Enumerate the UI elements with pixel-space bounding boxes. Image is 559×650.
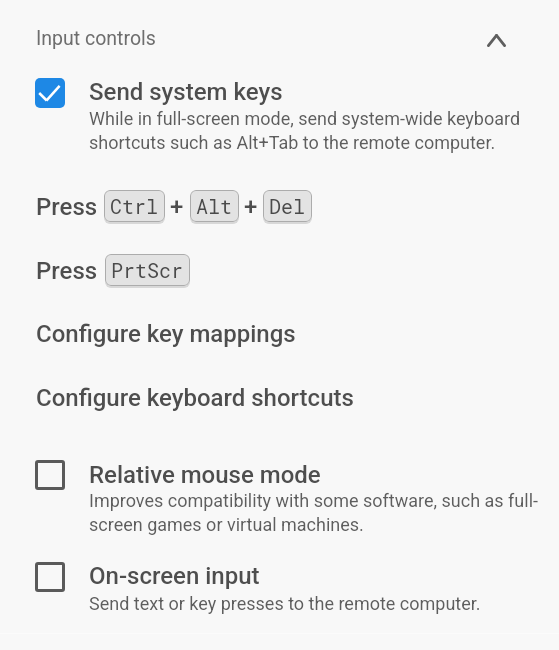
staticText: Configure keyboard shortcuts bbox=[36, 384, 354, 412]
staticText: Alt bbox=[196, 193, 233, 219]
staticText: Input controls bbox=[36, 27, 156, 50]
staticText: Ctrl bbox=[110, 193, 159, 219]
staticText: On-screen input bbox=[89, 562, 260, 590]
button[interactable]: Relative mouse mode bbox=[0, 452, 559, 532]
staticText: Del bbox=[269, 193, 306, 219]
button[interactable]: On-screen input bbox=[0, 554, 559, 612]
staticText: Press bbox=[36, 257, 98, 285]
staticText: Improves compatibility with some softwar… bbox=[89, 490, 541, 535]
button[interactable]: Send system keys bbox=[0, 70, 559, 150]
other: Collapse Input controls bbox=[476, 20, 516, 60]
button[interactable]: Press bbox=[0, 189, 559, 225]
staticText: While in full-screen mode, send system-w… bbox=[89, 108, 541, 153]
staticText: PrtScr bbox=[111, 257, 184, 283]
button[interactable]: Press bbox=[0, 253, 559, 289]
button[interactable]: Input controls bbox=[0, 0, 559, 70]
staticText: Relative mouse mode bbox=[89, 461, 321, 489]
staticText: PrtScr bbox=[111, 256, 184, 282]
staticText: Send system keys bbox=[89, 78, 283, 106]
staticText: Send text or key presses to the remote c… bbox=[89, 593, 541, 614]
staticText: Press bbox=[36, 193, 98, 221]
staticText: Alt bbox=[196, 192, 233, 218]
staticText: + bbox=[170, 193, 184, 221]
button[interactable]: Configure key mappings bbox=[0, 318, 559, 352]
staticText: + bbox=[244, 193, 258, 221]
staticText: Configure key mappings bbox=[36, 320, 296, 348]
staticText: Del bbox=[269, 192, 306, 218]
button[interactable]: Configure keyboard shortcuts bbox=[0, 382, 559, 416]
staticText: Ctrl bbox=[110, 192, 159, 218]
